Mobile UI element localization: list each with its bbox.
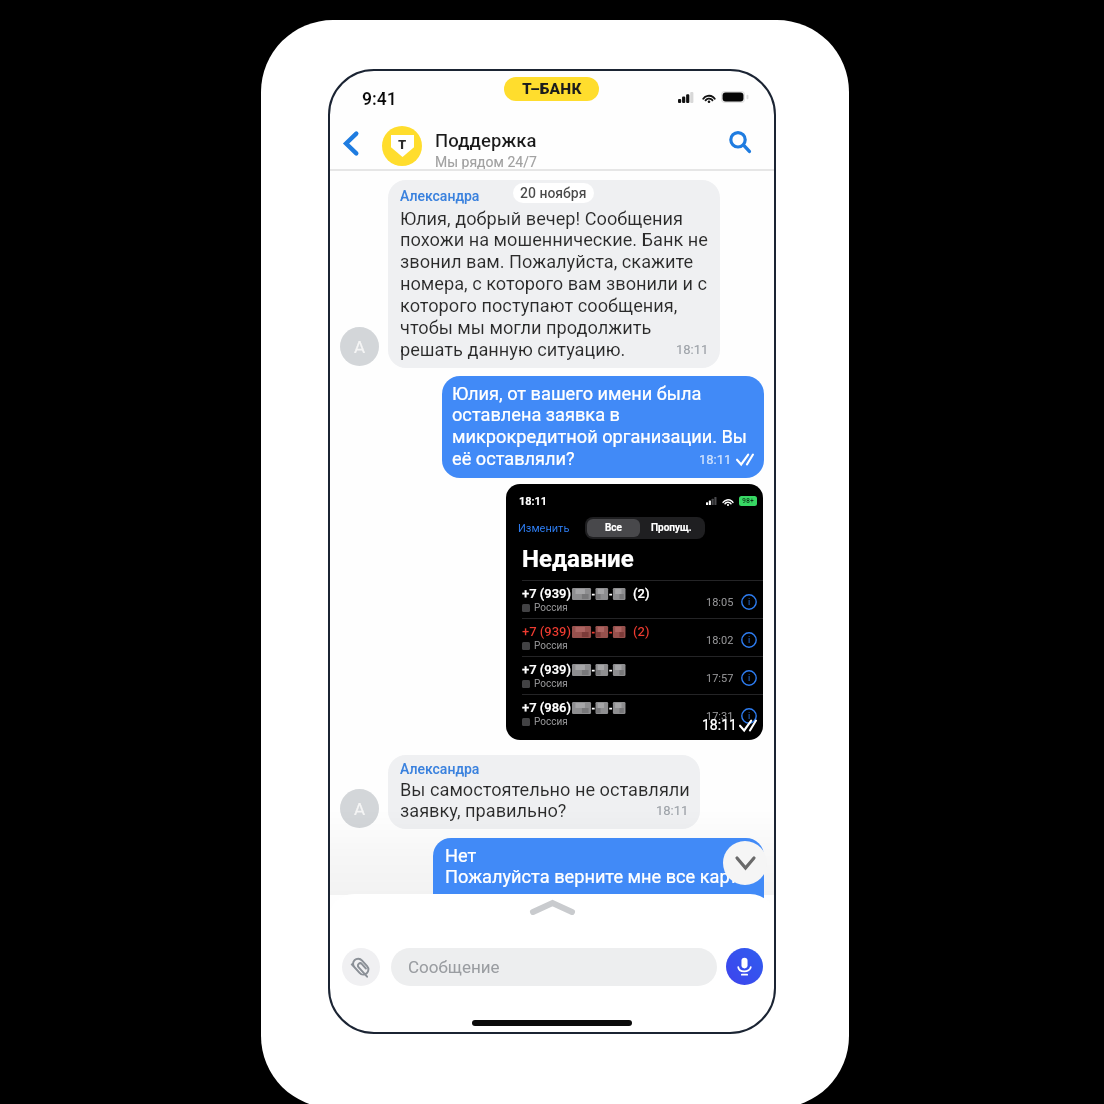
button[interactable]: Пропущ. bbox=[640, 519, 703, 537]
staticText: (2) bbox=[633, 586, 650, 601]
staticText: +7 (939) bbox=[522, 624, 572, 639]
staticText: 17:57 bbox=[706, 672, 734, 685]
staticText: Юлия, от вашего имени была оставлена зая… bbox=[452, 383, 753, 470]
button[interactable]: Voice message bbox=[726, 948, 763, 985]
staticText: Пожалуйста верните мне все карты bbox=[445, 866, 752, 887]
button[interactable]: Back bbox=[331, 123, 371, 163]
staticText: 18:11 bbox=[702, 717, 737, 733]
staticText: i bbox=[748, 711, 751, 722]
button[interactable]: Attach file bbox=[342, 948, 380, 986]
staticText: T bbox=[398, 137, 407, 152]
staticText: i bbox=[748, 597, 751, 608]
staticText: Юлия, добрый вечер! Сообщения похожи на … bbox=[400, 208, 710, 361]
button[interactable]: +7 (986) bbox=[506, 694, 763, 710]
staticText: Недавние bbox=[522, 545, 634, 573]
staticText: A bbox=[354, 799, 366, 819]
button[interactable]: 18:11 bbox=[506, 484, 763, 740]
staticText: i bbox=[748, 673, 751, 684]
staticText: Россия bbox=[534, 678, 568, 690]
button[interactable]: +7 (939) bbox=[506, 656, 763, 672]
staticText: Мы рядом 24/7 bbox=[435, 154, 537, 170]
staticText: Нет bbox=[445, 845, 477, 866]
button[interactable]: Изменить bbox=[518, 522, 570, 535]
staticText: +7 (986) bbox=[522, 700, 572, 715]
staticText: T–БАНК bbox=[522, 80, 582, 98]
button[interactable]: Александра bbox=[388, 755, 700, 829]
staticText: Все bbox=[605, 522, 622, 534]
button[interactable]: Scroll to bottom bbox=[723, 841, 767, 885]
staticText: i bbox=[748, 635, 751, 646]
staticText: 98+ bbox=[742, 497, 754, 505]
staticText: 18:05 bbox=[706, 596, 734, 609]
button[interactable]: Все bbox=[587, 519, 640, 537]
staticText: 18:11 bbox=[656, 803, 689, 818]
staticText: Поддержка bbox=[435, 130, 537, 152]
staticText: Вы самостоятельно не оставляли заявку, п… bbox=[400, 779, 690, 822]
staticText: Александра bbox=[400, 188, 480, 204]
staticText: Пропущ. bbox=[651, 522, 692, 534]
staticText: 18:11 bbox=[699, 452, 732, 467]
staticText: 18:02 bbox=[706, 634, 734, 647]
staticText: 18:11 bbox=[519, 495, 548, 508]
staticText: 9:41 bbox=[362, 89, 397, 110]
staticText: Александра bbox=[400, 761, 480, 777]
staticText: (2) bbox=[633, 624, 650, 639]
staticText: Россия bbox=[534, 602, 568, 614]
staticText: +7 (939) bbox=[522, 586, 572, 601]
button[interactable]: +7 (939) bbox=[506, 618, 763, 634]
staticText: A bbox=[354, 337, 366, 357]
button[interactable]: Юлия, от вашего имени была оставлена зая… bbox=[442, 376, 764, 478]
button[interactable]: Нет bbox=[433, 838, 764, 935]
button[interactable]: +7 (939) bbox=[506, 580, 763, 596]
staticText: 20 ноября bbox=[520, 185, 587, 201]
button[interactable]: Search bbox=[720, 122, 760, 162]
staticText: Сообщение bbox=[408, 957, 500, 977]
button[interactable]: Сообщение bbox=[391, 948, 717, 986]
staticText: 17:31 bbox=[706, 710, 734, 723]
staticText: Россия bbox=[534, 640, 568, 652]
staticText: 18:11 bbox=[676, 342, 709, 357]
staticText: Россия bbox=[534, 716, 568, 728]
button[interactable]: Александра bbox=[388, 180, 720, 368]
staticText: +7 (939) bbox=[522, 662, 572, 677]
